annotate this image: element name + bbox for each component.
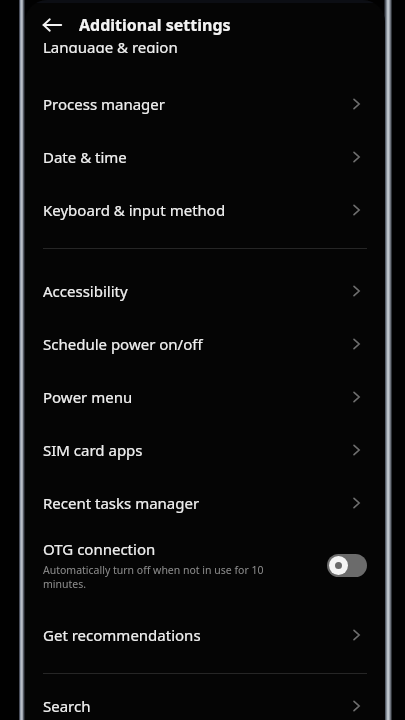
button[interactable]: SIM card apps [25,423,385,476]
staticText: Language & region [43,37,178,53]
staticText: Additional settings [79,14,231,36]
staticText: Date & time [43,147,127,167]
button[interactable]: OTG connection [25,529,385,601]
button[interactable]: Language & region [25,50,385,66]
staticText: Accessibility [43,281,128,301]
button[interactable]: Process manager [25,77,385,130]
staticText: Schedule power on/off [43,334,203,354]
button[interactable]: Keyboard & input method [25,183,385,236]
button[interactable]: Recent tasks manager [25,476,385,529]
staticText: SIM card apps [43,440,143,460]
button[interactable]: Power menu [25,370,385,423]
staticText: Keyboard & input method [43,200,226,220]
button[interactable]: Date & time [25,130,385,183]
button[interactable]: Back [25,0,79,50]
staticText: Recent tasks manager [43,493,200,513]
staticText: Automatically turn off when not in use f… [43,563,264,591]
staticText: Power menu [43,387,133,407]
button[interactable]: Get recommendations [25,613,385,657]
staticText: Process manager [43,94,165,114]
staticText: Get recommendations [43,625,201,645]
staticText: OTG connection [43,539,156,559]
button[interactable]: Search [25,692,385,720]
button[interactable]: OTG connection toggle [327,554,367,577]
button[interactable]: Schedule power on/off [25,317,385,370]
staticText: Search [43,696,91,716]
button[interactable]: Accessibility [25,264,385,317]
